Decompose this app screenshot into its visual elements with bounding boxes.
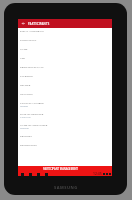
button[interactable]: DATE OF REGISTER [18,111,112,122]
staticText: EVENT / PROGRAM [20,29,44,32]
staticText: NAME OF ORGANISER [20,123,48,126]
button[interactable]: NAME OF ORGANISER [18,122,112,133]
staticText: Sample [20,126,29,129]
button[interactable]: Menu [20,172,24,176]
button[interactable]: Home [28,172,32,176]
staticText: CATEGORY [20,74,34,77]
button[interactable]: EVENT / PROGRAM [18,28,112,37]
staticText: REMARKS [20,134,32,137]
button[interactable]: CONTACT NUMBER [18,100,112,111]
button[interactable]: REMARKS [18,133,112,142]
button[interactable]: DESCRIPTION [18,142,112,151]
button[interactable]: PARTICIPANT MANAGEMENT [18,166,112,171]
button[interactable]: Screenshot [44,172,48,176]
button[interactable]: CATEGORY [18,73,112,82]
staticText: 12:45 [93,171,102,176]
staticText: CONTACT NUMBER [20,101,44,104]
staticText: PARTICIPANTS [28,22,50,26]
button[interactable]: REGISTRATION NO [18,64,112,73]
button[interactable]: AGE [18,55,112,64]
button[interactable]: LOCATION [18,91,112,100]
staticText: 12/07/18 [20,115,31,118]
staticText: PARTICIPANT [20,38,37,41]
staticText: REGISTRATION NO [20,65,44,68]
staticText: SAMSUNG [54,185,78,190]
staticText: PARTICIPANT MANAGEMENT [43,167,78,171]
staticText: LOCATION [20,92,34,95]
button[interactable]: PARTICIPANT [18,37,112,46]
staticText: AGE [20,56,26,59]
staticText: NAME [20,47,28,50]
staticText: Mobile [20,104,29,107]
staticText: GENDER [20,83,31,86]
button[interactable]: Back [18,19,28,28]
button[interactable]: GENDER [18,82,112,91]
staticText: DESCRIPTION [20,143,38,146]
button[interactable]: Back [36,172,40,176]
button[interactable]: NAME [18,46,112,55]
staticText: DATE OF REGISTER [20,112,44,115]
